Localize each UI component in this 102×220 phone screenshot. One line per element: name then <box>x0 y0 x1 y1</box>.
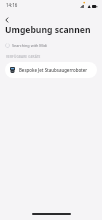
staticText: Umgebung scannen <box>5 24 91 36</box>
staticText: Bespoke Jet Staubsaugerroboter <box>19 67 88 73</box>
staticText: Searching with Midi <box>12 43 48 48</box>
button[interactable]: Back <box>1 14 13 26</box>
button[interactable]: Bespoke Jet Staubsaugerroboter <box>5 62 97 78</box>
staticText: VERFÜGBARE GERÄTE <box>6 55 41 59</box>
staticText: 14:16 <box>6 2 18 8</box>
